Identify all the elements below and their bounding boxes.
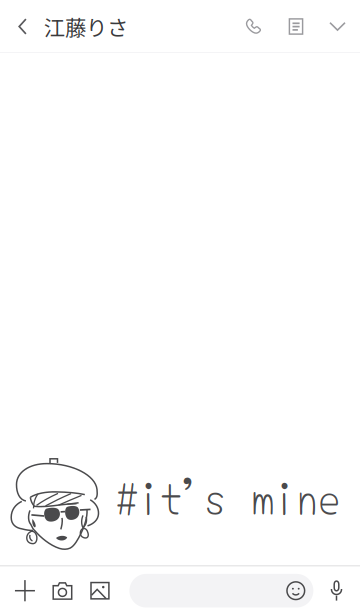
button[interactable]: Add xyxy=(6,565,44,616)
staticText: 江藤りさ xyxy=(44,11,128,42)
staticText: #it's mine xyxy=(116,463,340,527)
button[interactable]: Collapse xyxy=(317,0,358,53)
button[interactable]: Notes xyxy=(275,0,317,53)
button[interactable]: Call xyxy=(232,0,275,53)
button[interactable]: Voice message xyxy=(320,565,353,616)
button[interactable]: Camera xyxy=(44,565,81,616)
button[interactable]: Enter message xyxy=(129,574,313,608)
button[interactable]: Back xyxy=(7,0,39,53)
button[interactable]: Photos xyxy=(81,565,119,616)
button[interactable]: 江藤りさ xyxy=(39,0,128,53)
